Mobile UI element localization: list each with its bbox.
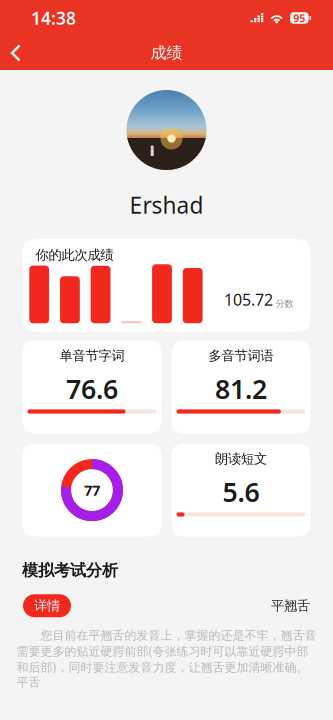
staticText: 14:38 <box>31 6 76 29</box>
staticText: 81.2 <box>215 371 267 406</box>
staticText: 单音节字词 <box>59 348 124 364</box>
staticText: Ershad <box>129 190 203 220</box>
staticText: 多音节词语 <box>208 348 273 364</box>
staticText: 76.6 <box>66 371 118 406</box>
staticText: 77 <box>84 480 100 500</box>
staticText: 你的此次成绩 <box>35 247 113 263</box>
staticText: 分数 <box>275 298 293 309</box>
staticText: 朗读短文 <box>215 451 267 467</box>
staticText: 95 <box>293 11 305 25</box>
staticText: 平翘舌 <box>271 598 310 614</box>
staticText: 模拟考试分析 <box>22 561 118 580</box>
staticText: 详情 <box>34 598 60 614</box>
staticText: 成绩 <box>150 43 182 63</box>
button[interactable]: Back <box>0 36 36 70</box>
staticText: 5.6 <box>222 474 259 509</box>
staticText: 您目前在平翘舌的发音上，掌握的还是不牢，翘舌音需要更多的贴近硬腭前部(夸张练习时… <box>16 628 316 690</box>
button[interactable]: 详情 <box>23 594 71 617</box>
staticText: 105.72 <box>224 289 273 310</box>
